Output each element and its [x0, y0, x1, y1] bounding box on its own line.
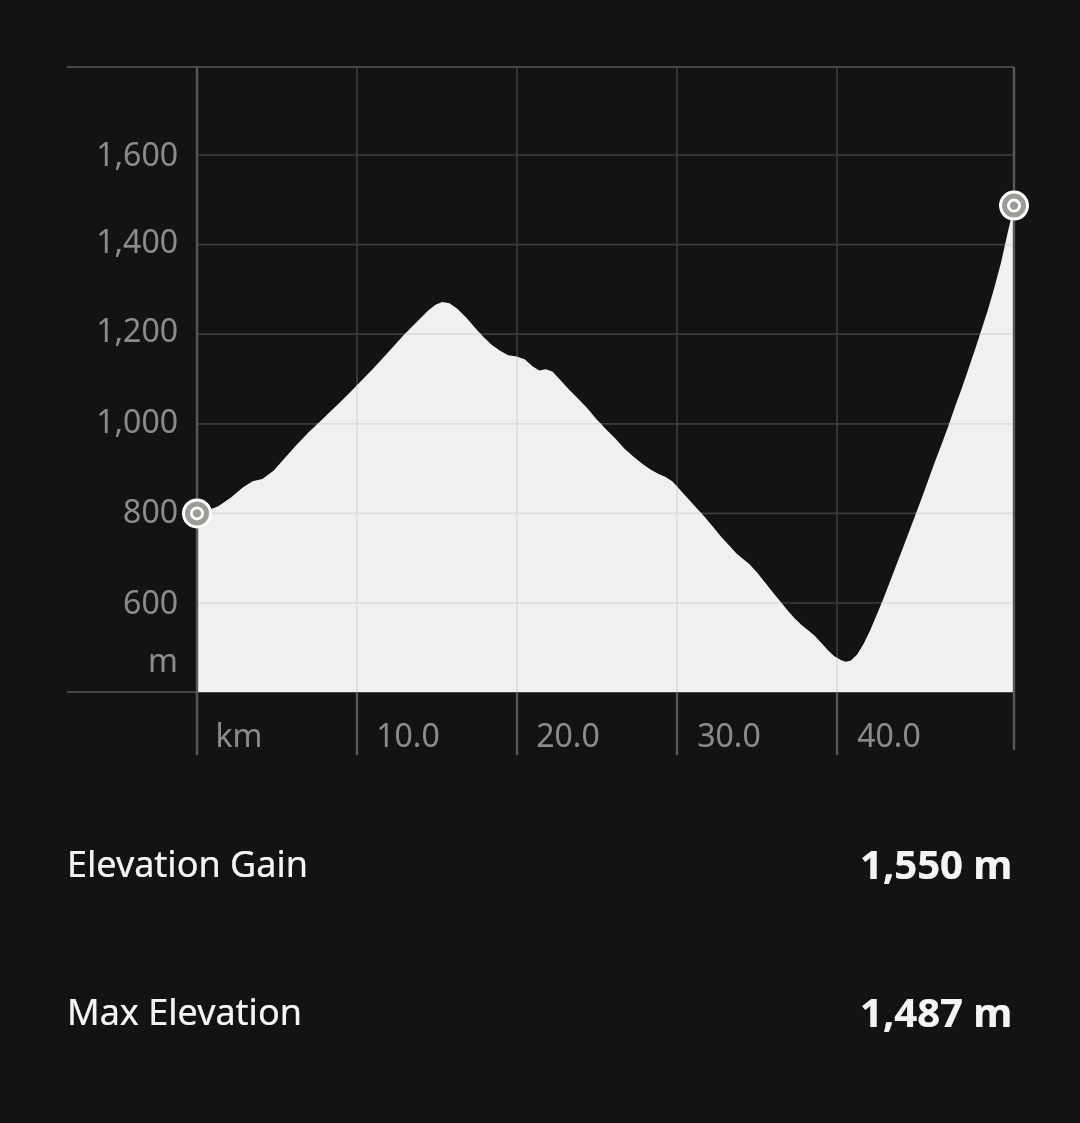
staticText: 10.0	[328, 713, 488, 757]
staticText: km	[159, 713, 319, 757]
staticText: 1,000	[0, 399, 178, 443]
staticText: 1,400	[0, 219, 178, 263]
staticText: 20.0	[488, 713, 648, 757]
button[interactable]: Elevation profile chart	[0, 0, 1080, 790]
staticText: 1,600	[0, 132, 178, 176]
staticText: 30.0	[649, 713, 809, 757]
staticText: 800	[0, 489, 178, 533]
staticText: Elevation Gain	[67, 839, 308, 888]
staticText: Max Elevation	[67, 987, 302, 1036]
staticText: 1,200	[0, 308, 178, 352]
button[interactable]: Max Elevation	[0, 976, 1080, 1046]
staticText: 1,550 m	[860, 836, 1013, 890]
staticText: 1,487 m	[860, 984, 1013, 1038]
button[interactable]: Elevation Gain	[0, 828, 1080, 898]
staticText: m	[0, 638, 178, 682]
staticText: 600	[0, 580, 178, 624]
staticText: 40.0	[809, 713, 969, 757]
